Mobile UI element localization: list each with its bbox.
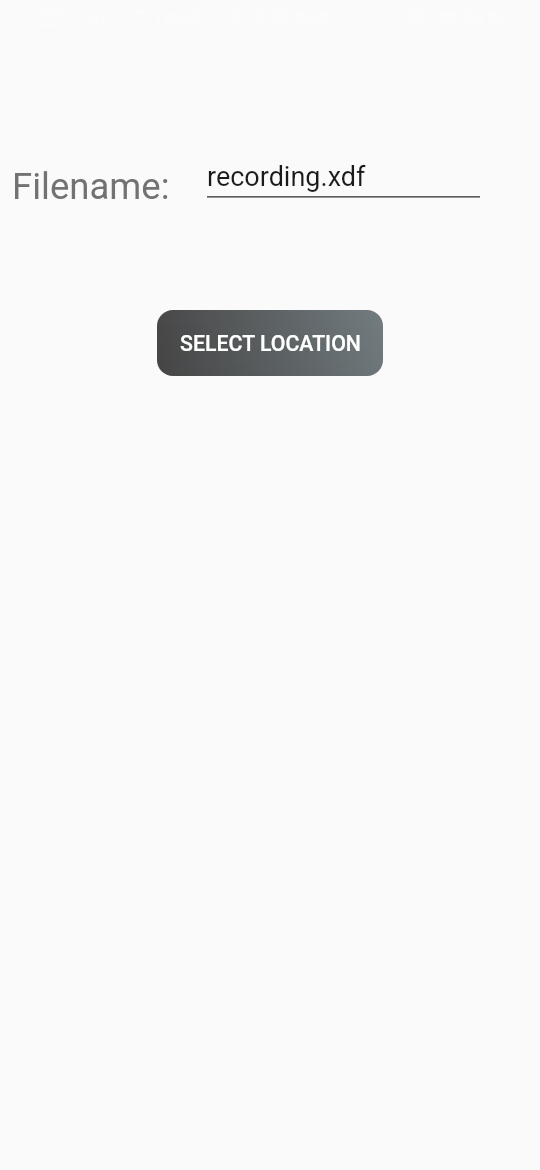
staticText: Filename: [12, 165, 170, 208]
button[interactable]: SELECT LOCATION [157, 310, 383, 376]
staticText: SELECT LOCATION [180, 331, 361, 356]
button[interactable]: recording.xdf [207, 152, 480, 198]
staticText: recording.xdf [207, 161, 366, 193]
